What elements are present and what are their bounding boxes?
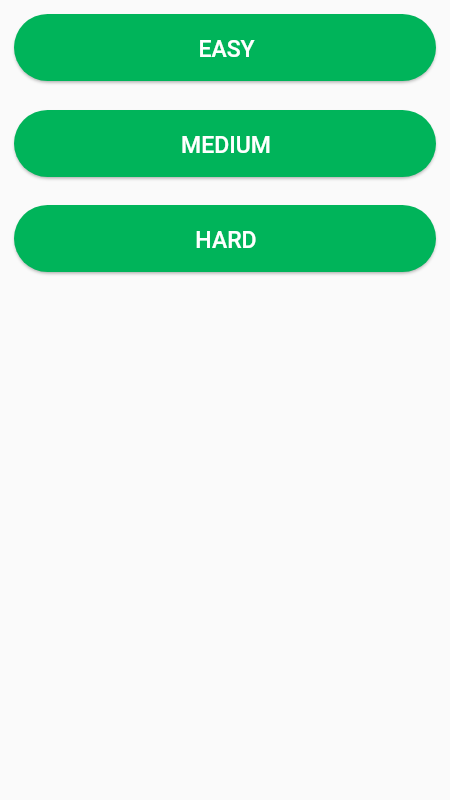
staticText: HARD	[195, 227, 257, 254]
button[interactable]: EASY	[14, 14, 436, 81]
staticText: EASY	[198, 36, 255, 63]
button[interactable]: HARD	[14, 205, 436, 272]
button[interactable]: MEDIUM	[14, 110, 436, 177]
staticText: MEDIUM	[181, 132, 271, 159]
